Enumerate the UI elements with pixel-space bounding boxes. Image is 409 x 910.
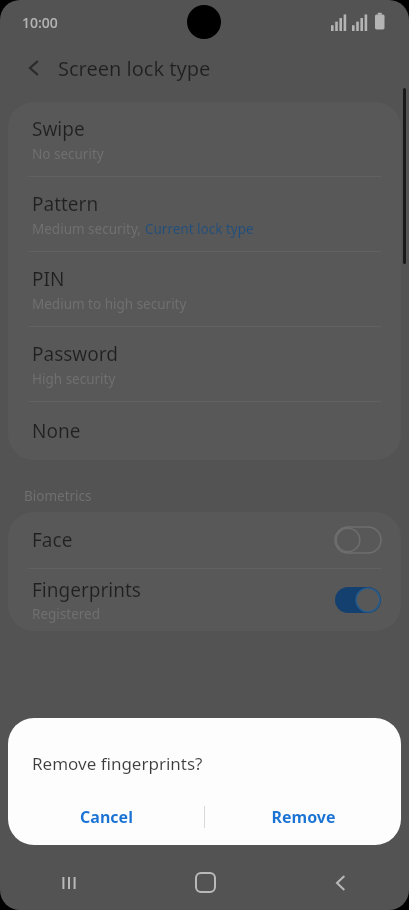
- staticText: Remove fingerprints?: [32, 752, 203, 775]
- staticText: Registered: [32, 605, 100, 623]
- staticText: Password: [32, 341, 118, 367]
- button[interactable]: Pattern: [8, 177, 401, 251]
- button[interactable]: Back: [273, 855, 409, 910]
- staticText: PIN: [32, 266, 65, 292]
- button[interactable]: Toggle off: [335, 527, 381, 553]
- staticText: Swipe: [32, 116, 85, 142]
- staticText: None: [32, 418, 81, 444]
- staticText: Pattern: [32, 191, 99, 217]
- button[interactable]: Face: [8, 512, 401, 568]
- button[interactable]: Swipe: [8, 102, 401, 176]
- button[interactable]: Remove: [205, 789, 401, 845]
- staticText: Medium to high security: [32, 295, 187, 313]
- staticText: Current lock type: [145, 220, 254, 238]
- button[interactable]: Toggle on: [335, 587, 381, 613]
- button[interactable]: PIN: [8, 252, 401, 326]
- staticText: Biometrics: [24, 487, 92, 505]
- button[interactable]: Password: [8, 327, 401, 401]
- staticText: Face: [32, 527, 73, 553]
- button[interactable]: None: [8, 402, 401, 460]
- button[interactable]: Cancel: [8, 789, 204, 845]
- staticText: High security: [32, 370, 116, 388]
- staticText: Cancel: [80, 806, 133, 828]
- staticText: Medium security,: [32, 220, 145, 238]
- staticText: Remove: [271, 806, 336, 828]
- button[interactable]: Back: [14, 48, 54, 88]
- staticText: Fingerprints: [32, 577, 141, 603]
- staticText: Screen lock type: [58, 55, 211, 82]
- button[interactable]: Home: [137, 855, 273, 910]
- staticText: 10:00: [22, 13, 58, 32]
- button[interactable]: Recents: [0, 855, 137, 910]
- staticText: No security: [32, 145, 104, 163]
- button[interactable]: Fingerprints: [8, 569, 401, 631]
